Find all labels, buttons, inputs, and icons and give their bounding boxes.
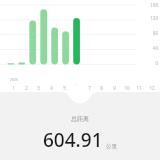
staticText: 80 bbox=[152, 30, 158, 36]
staticText: 11 bbox=[136, 85, 142, 91]
button[interactable] bbox=[0, 92, 160, 104]
staticText: 4 bbox=[50, 85, 53, 91]
button[interactable]: 8 bbox=[97, 83, 105, 91]
button[interactable]: 12 bbox=[148, 83, 156, 91]
staticText: 0 bbox=[155, 60, 158, 66]
staticText: 604.91 bbox=[43, 127, 103, 153]
staticText: 5 bbox=[63, 85, 66, 91]
button[interactable]: 10 bbox=[123, 83, 131, 91]
staticText: 2 bbox=[25, 85, 28, 91]
staticText: 120 bbox=[150, 15, 158, 21]
button[interactable]: 9 bbox=[110, 83, 118, 91]
button[interactable]: 4 bbox=[47, 83, 55, 91]
staticText: 7 bbox=[88, 85, 91, 91]
button[interactable]: 1 bbox=[9, 83, 17, 91]
staticText: 40 bbox=[152, 45, 158, 51]
other: Monthly distance chart bbox=[0, 0, 160, 92]
button[interactable]: 2 bbox=[22, 83, 30, 91]
staticText: 8 bbox=[100, 85, 103, 91]
staticText: 3 bbox=[37, 85, 40, 91]
button[interactable]: 5 bbox=[60, 83, 68, 91]
staticText: 公里 bbox=[106, 143, 117, 150]
staticText: 6 bbox=[75, 83, 78, 89]
staticText: 10 bbox=[124, 85, 130, 91]
staticText: 9 bbox=[113, 85, 116, 91]
staticText: 12 bbox=[149, 85, 155, 91]
staticText: 2020 bbox=[10, 77, 19, 82]
button[interactable]: 3 bbox=[34, 83, 42, 91]
staticText: 1 bbox=[12, 85, 15, 91]
staticText: 160 bbox=[150, 2, 158, 8]
staticText: 总距离 bbox=[71, 115, 89, 123]
button[interactable]: 11 bbox=[135, 83, 143, 91]
button[interactable]: 7 bbox=[85, 83, 93, 91]
